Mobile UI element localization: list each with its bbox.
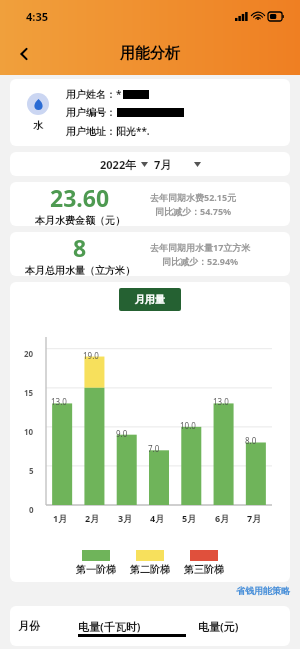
staticText: 2月 xyxy=(85,512,100,524)
staticText: 去年同期用水量17立方米 xyxy=(150,241,251,253)
staticText: 7月 xyxy=(154,157,172,172)
staticText: 电量(元) xyxy=(198,619,239,634)
button[interactable]: 省钱用能策略 xyxy=(236,585,290,596)
staticText: 月用量 xyxy=(135,293,165,306)
staticText: 用户编号： xyxy=(66,106,116,119)
staticText: 23.60 xyxy=(50,182,110,213)
button[interactable]: 23.60 xyxy=(10,182,290,226)
staticText: 3月 xyxy=(118,512,133,524)
staticText: 用户姓名：* xyxy=(66,87,122,101)
staticText: 本月总用水量（立方米） xyxy=(25,264,135,276)
staticText: 同比减少：54.75% xyxy=(155,205,232,217)
staticText: 电量(千瓦时) xyxy=(78,619,141,634)
staticText: 用户地址：阳光**. xyxy=(66,124,150,138)
button[interactable]: 2022年 xyxy=(100,157,148,172)
staticText: 月份 xyxy=(18,619,40,633)
staticText: 2022年 xyxy=(100,157,137,172)
button[interactable]: 8 xyxy=(10,232,290,276)
staticText: 13.0 xyxy=(51,396,67,407)
staticText: 0 xyxy=(29,504,34,515)
staticText: 7月 xyxy=(247,512,262,524)
staticText: 5月 xyxy=(182,512,197,524)
staticText: 第一阶梯 xyxy=(76,563,116,576)
staticText: 第三阶梯 xyxy=(184,563,224,576)
button[interactable]: 7月 xyxy=(154,157,201,172)
staticText: 4月 xyxy=(150,512,165,524)
staticText: 水 xyxy=(33,119,43,132)
staticText: 13.0 xyxy=(213,396,229,407)
staticText: 1月 xyxy=(53,512,68,524)
staticText: 4:35 xyxy=(26,9,48,24)
staticText: 本月水费金额（元） xyxy=(35,214,125,226)
staticText: 用能分析 xyxy=(120,44,180,63)
staticText: 8 xyxy=(73,232,87,263)
staticText: 同比减少：52.94% xyxy=(162,255,239,267)
staticText: 6月 xyxy=(215,512,230,524)
staticText: 9.0 xyxy=(116,428,128,439)
staticText: 8.0 xyxy=(245,435,257,446)
staticText: 5 xyxy=(29,465,34,476)
button[interactable]: 月用量 xyxy=(119,288,181,311)
staticText: 10.0 xyxy=(180,420,196,431)
staticText: 15 xyxy=(24,387,34,398)
staticText: 19.0 xyxy=(83,350,99,361)
staticText: 7.0 xyxy=(148,443,160,454)
staticText: 20 xyxy=(24,348,34,359)
staticText: 第二阶梯 xyxy=(130,563,170,576)
button[interactable]: Back xyxy=(8,38,40,70)
staticText: 去年同期水费52.15元 xyxy=(150,191,237,203)
staticText: 省钱用能策略 xyxy=(236,585,290,596)
staticText: 10 xyxy=(24,426,34,437)
button[interactable]: 水 xyxy=(10,79,290,146)
